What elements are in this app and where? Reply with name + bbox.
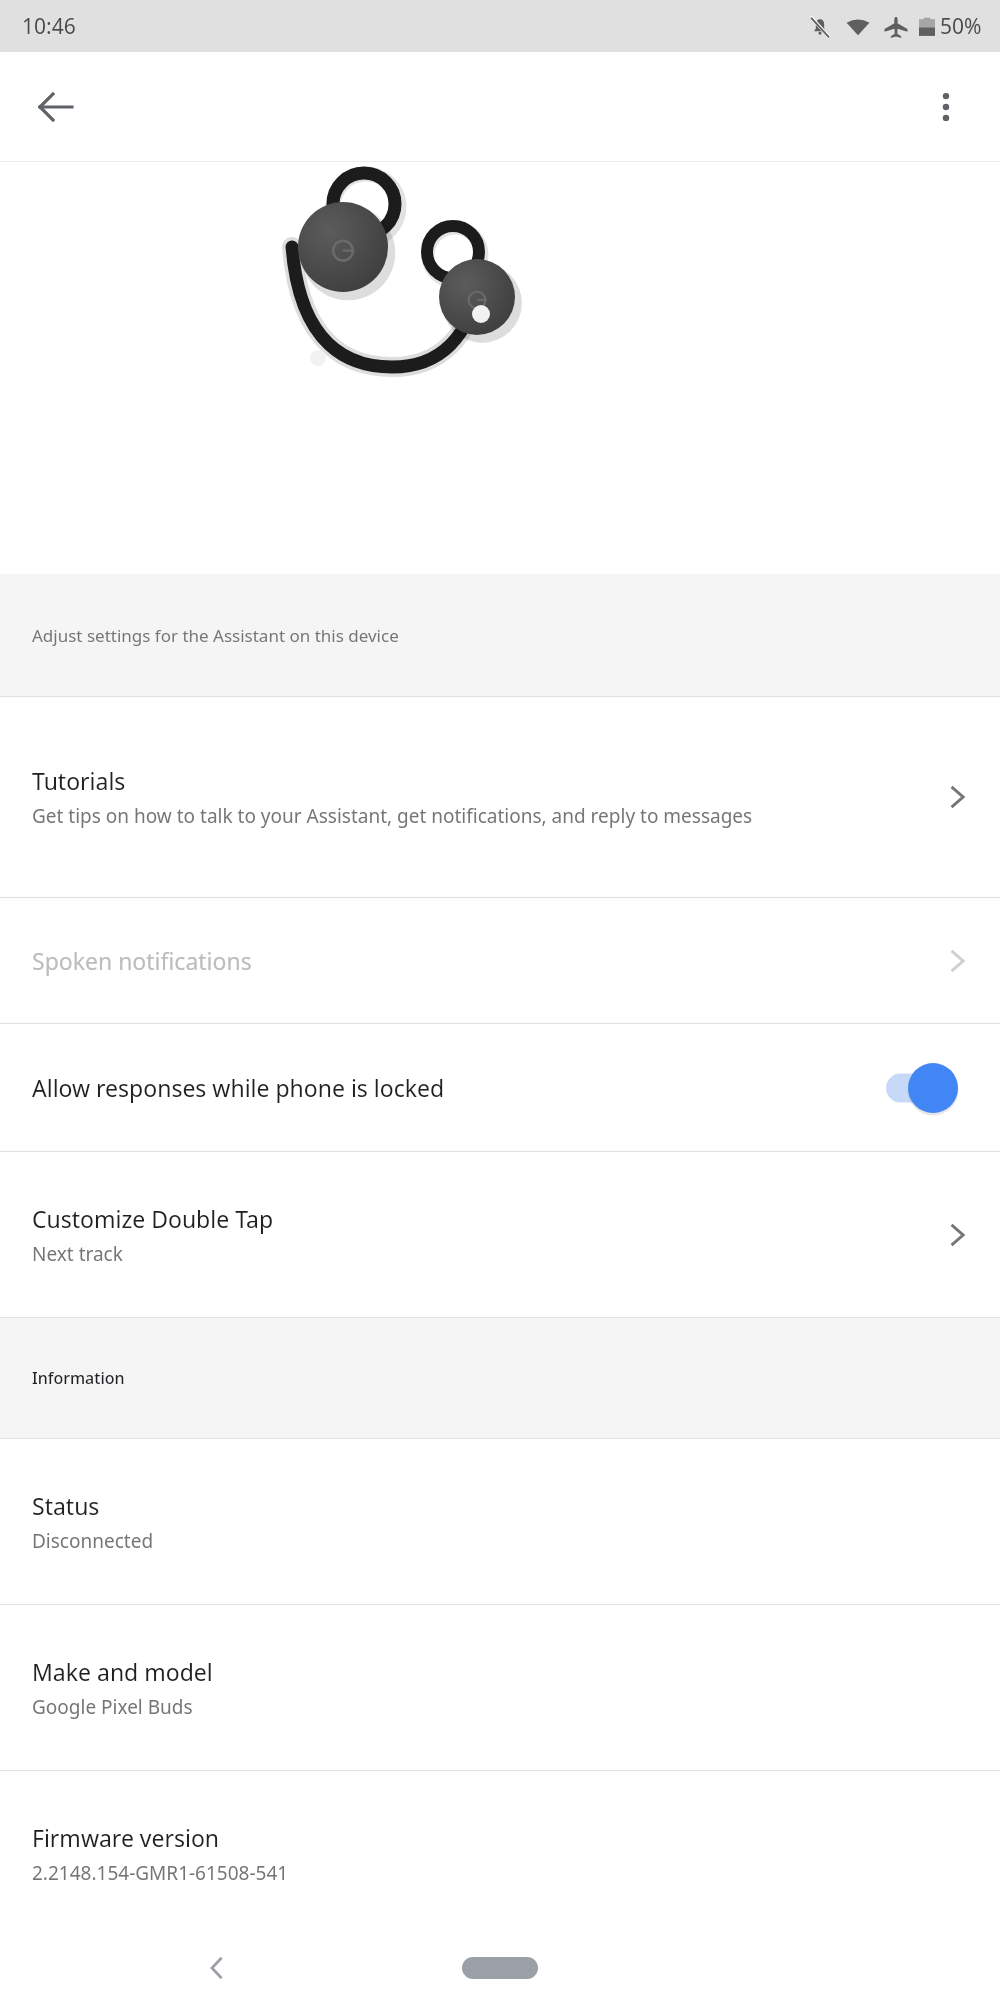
staticText: Status xyxy=(32,1490,100,1521)
button[interactable]: Back xyxy=(20,71,92,143)
staticText: Make and model xyxy=(32,1656,213,1687)
staticText: Tutorials xyxy=(32,765,126,796)
button[interactable]: Home xyxy=(440,1938,560,1998)
staticText: Allow responses while phone is locked xyxy=(32,1072,886,1103)
staticText: Next track xyxy=(32,1241,123,1267)
button[interactable]: Firmware version xyxy=(0,1771,1000,1936)
staticText: Google Pixel Buds xyxy=(32,1694,193,1720)
staticText: Information xyxy=(32,1367,125,1389)
button[interactable]: Back xyxy=(178,1936,258,2000)
staticText: Adjust settings for the Assistant on thi… xyxy=(32,624,399,647)
staticText: Customize Double Tap xyxy=(32,1203,274,1234)
staticText: Spoken notifications xyxy=(32,945,252,976)
button[interactable]: Tutorials xyxy=(0,697,1000,897)
staticText: 50% xyxy=(940,12,982,41)
button[interactable]: Allow responses while phone is locked xyxy=(0,1024,1000,1151)
staticText: Firmware version xyxy=(32,1822,220,1853)
button[interactable]: Status xyxy=(0,1439,1000,1604)
staticText: Get tips on how to talk to your Assistan… xyxy=(32,803,753,829)
staticText: 10:46 xyxy=(22,12,76,41)
button[interactable]: Make and model xyxy=(0,1605,1000,1770)
staticText: Disconnected xyxy=(32,1528,154,1554)
button[interactable]: More options xyxy=(910,71,982,143)
staticText: 2.2148.154-GMR1-61508-541 xyxy=(32,1860,289,1886)
button[interactable]: Customize Double Tap xyxy=(0,1152,1000,1317)
button[interactable]: Spoken notifications xyxy=(0,898,1000,1023)
